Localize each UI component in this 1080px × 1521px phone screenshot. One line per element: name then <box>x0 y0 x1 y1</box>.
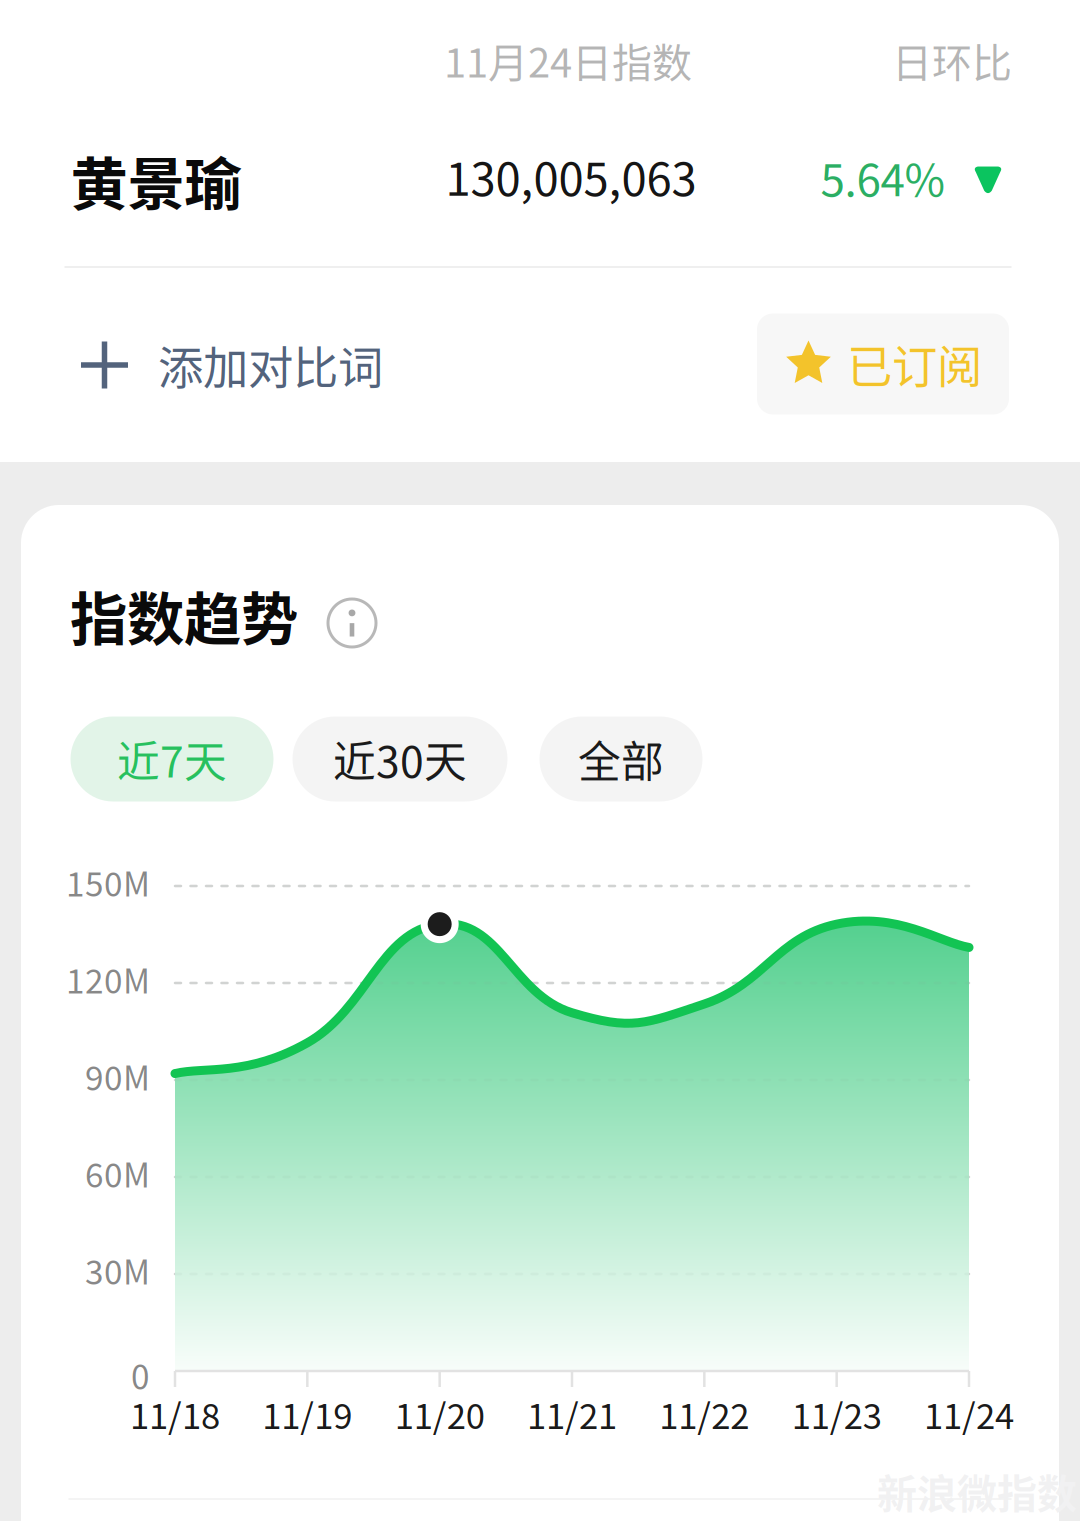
staticText: 150M <box>66 858 150 906</box>
staticText: 120M <box>66 955 150 1003</box>
staticText: 已订阅 <box>847 331 982 397</box>
button[interactable]: 近30天 <box>292 716 507 801</box>
staticText: 0 <box>131 1351 150 1399</box>
staticText: 11月24日指数 <box>444 31 692 89</box>
staticText: 11/20 <box>395 1389 485 1439</box>
staticText: 近7天 <box>117 728 227 790</box>
button[interactable]: 添加对比词 <box>59 302 405 428</box>
staticText: 指数趋势 <box>70 573 298 656</box>
staticText: 添加对比词 <box>158 332 383 398</box>
staticText: 30M <box>85 1246 150 1294</box>
staticText: 60M <box>85 1149 150 1197</box>
staticText: 全部 <box>578 728 664 790</box>
staticText: 日环比 <box>892 31 1012 89</box>
staticText: 11/21 <box>527 1389 617 1439</box>
staticText: 11/23 <box>792 1389 882 1439</box>
staticText: 近30天 <box>333 728 467 790</box>
staticText: 5.64% <box>820 145 945 209</box>
staticText: 黄景瑜 <box>70 138 241 221</box>
staticText: 11/22 <box>659 1389 749 1439</box>
staticText: 11/19 <box>262 1389 352 1439</box>
staticText: 新浪微指数 <box>877 1462 1077 1520</box>
button[interactable]: 全部 <box>539 716 702 801</box>
button[interactable]: 已订阅 <box>757 313 1009 414</box>
staticText: 130,005,063 <box>445 143 696 209</box>
button[interactable]: 指数趋势说明 <box>319 590 385 656</box>
staticText: 90M <box>85 1052 150 1100</box>
button[interactable]: 近7天 <box>70 716 273 801</box>
staticText: 11/18 <box>130 1389 220 1439</box>
staticText: 11/24 <box>924 1389 1014 1439</box>
